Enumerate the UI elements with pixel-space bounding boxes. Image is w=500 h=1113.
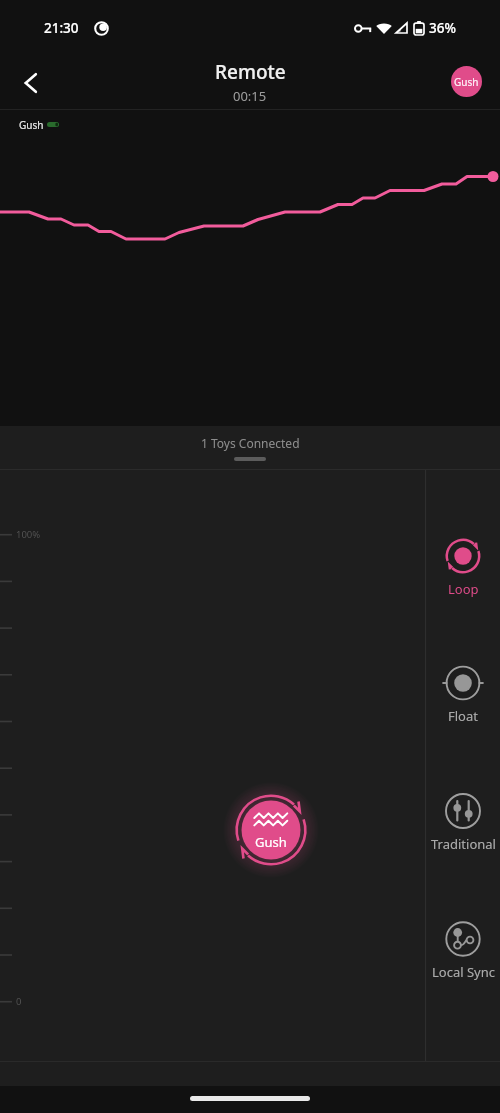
button[interactable]: Back [8,60,54,106]
button[interactable]: Traditional [426,791,500,853]
staticText: 0 [16,995,22,1008]
staticText: Float [448,707,478,725]
button[interactable]: Local Sync [426,919,500,981]
button[interactable]: Loop [426,536,500,598]
staticText: 21:30 [44,19,79,37]
staticText: Remote [215,59,286,85]
button[interactable]: Gush [451,66,482,97]
staticText: 100% [16,528,41,541]
staticText: Gush [19,118,44,132]
staticText: Gush [454,75,479,89]
staticText: Gush [255,833,287,851]
staticText: Loop [448,580,479,598]
button[interactable]: Float [426,663,500,725]
button[interactable]: Gush [223,782,319,878]
staticText: 36% [429,19,456,37]
staticText: Local Sync [432,963,495,981]
staticText: 00:15 [233,87,267,105]
staticText: Traditional [431,835,496,853]
staticText: 1 Toys Connected [201,435,300,451]
